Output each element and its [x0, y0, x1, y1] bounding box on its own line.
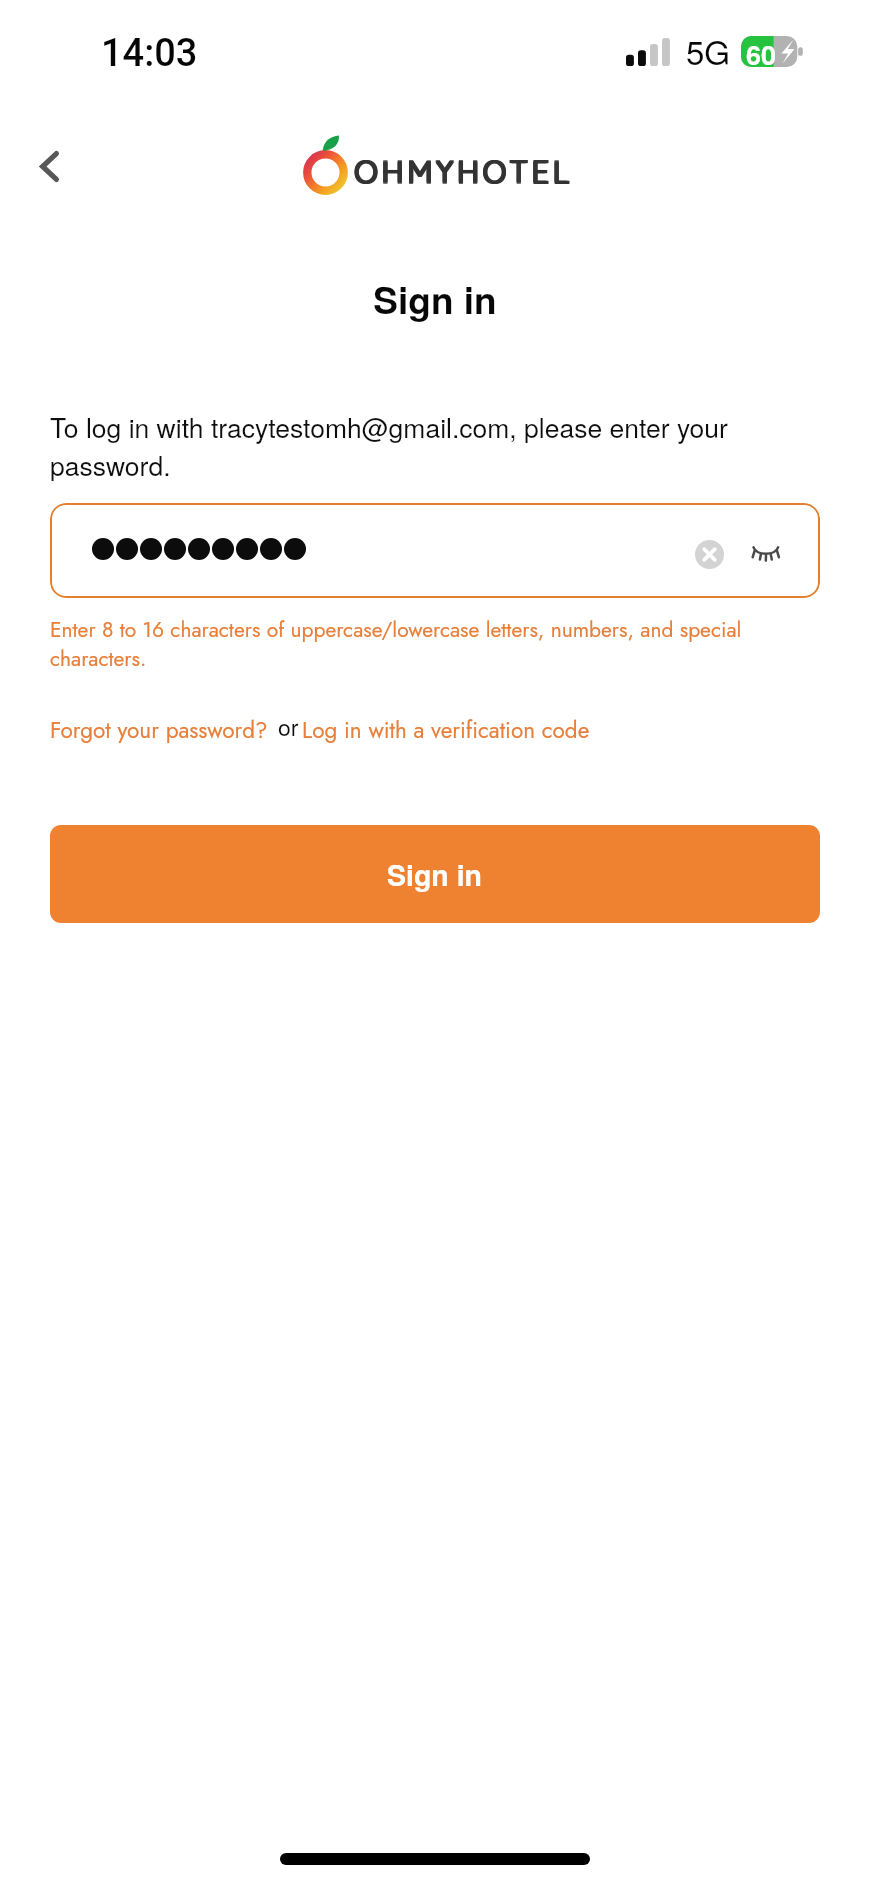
button[interactable]: Log in with a verification code — [302, 714, 590, 747]
staticText: OHMYHOTEL — [354, 152, 573, 190]
staticText: OHMYHOTEL — [353, 154, 572, 192]
staticText: Sign in — [387, 854, 483, 895]
button[interactable]: Clear — [685, 530, 733, 578]
staticText: To log in with tracytestomh@gmail.com, p… — [50, 408, 820, 483]
button[interactable]: Clear — [50, 503, 820, 598]
staticText: 5G — [686, 27, 731, 74]
staticText: OHMYHOTEL — [353, 153, 572, 191]
staticText: OHMYHOTEL — [356, 153, 575, 191]
staticText: OHMYHOTEL — [355, 152, 574, 190]
staticText: OHMYHOTEL — [356, 154, 575, 192]
staticText: OHMYHOTEL — [355, 153, 574, 191]
staticText: Sign in — [373, 272, 497, 325]
button[interactable]: Sign in — [50, 825, 820, 923]
staticText: Enter 8 to 16 characters of uppercase/lo… — [50, 615, 822, 674]
staticText: OHMYHOTEL — [356, 152, 575, 190]
button[interactable]: Forgot your password? — [50, 714, 268, 747]
staticText: 14:03 — [101, 31, 198, 76]
button[interactable]: Back — [19, 136, 79, 196]
staticText: 60 — [746, 35, 777, 66]
staticText: OHMYHOTEL — [355, 154, 574, 192]
staticText: OHMYHOTEL — [353, 152, 572, 190]
staticText: OHMYHOTEL — [354, 153, 573, 191]
staticText: or — [278, 710, 299, 743]
button[interactable]: Show password — [743, 530, 791, 578]
staticText: OHMYHOTEL — [354, 154, 573, 192]
